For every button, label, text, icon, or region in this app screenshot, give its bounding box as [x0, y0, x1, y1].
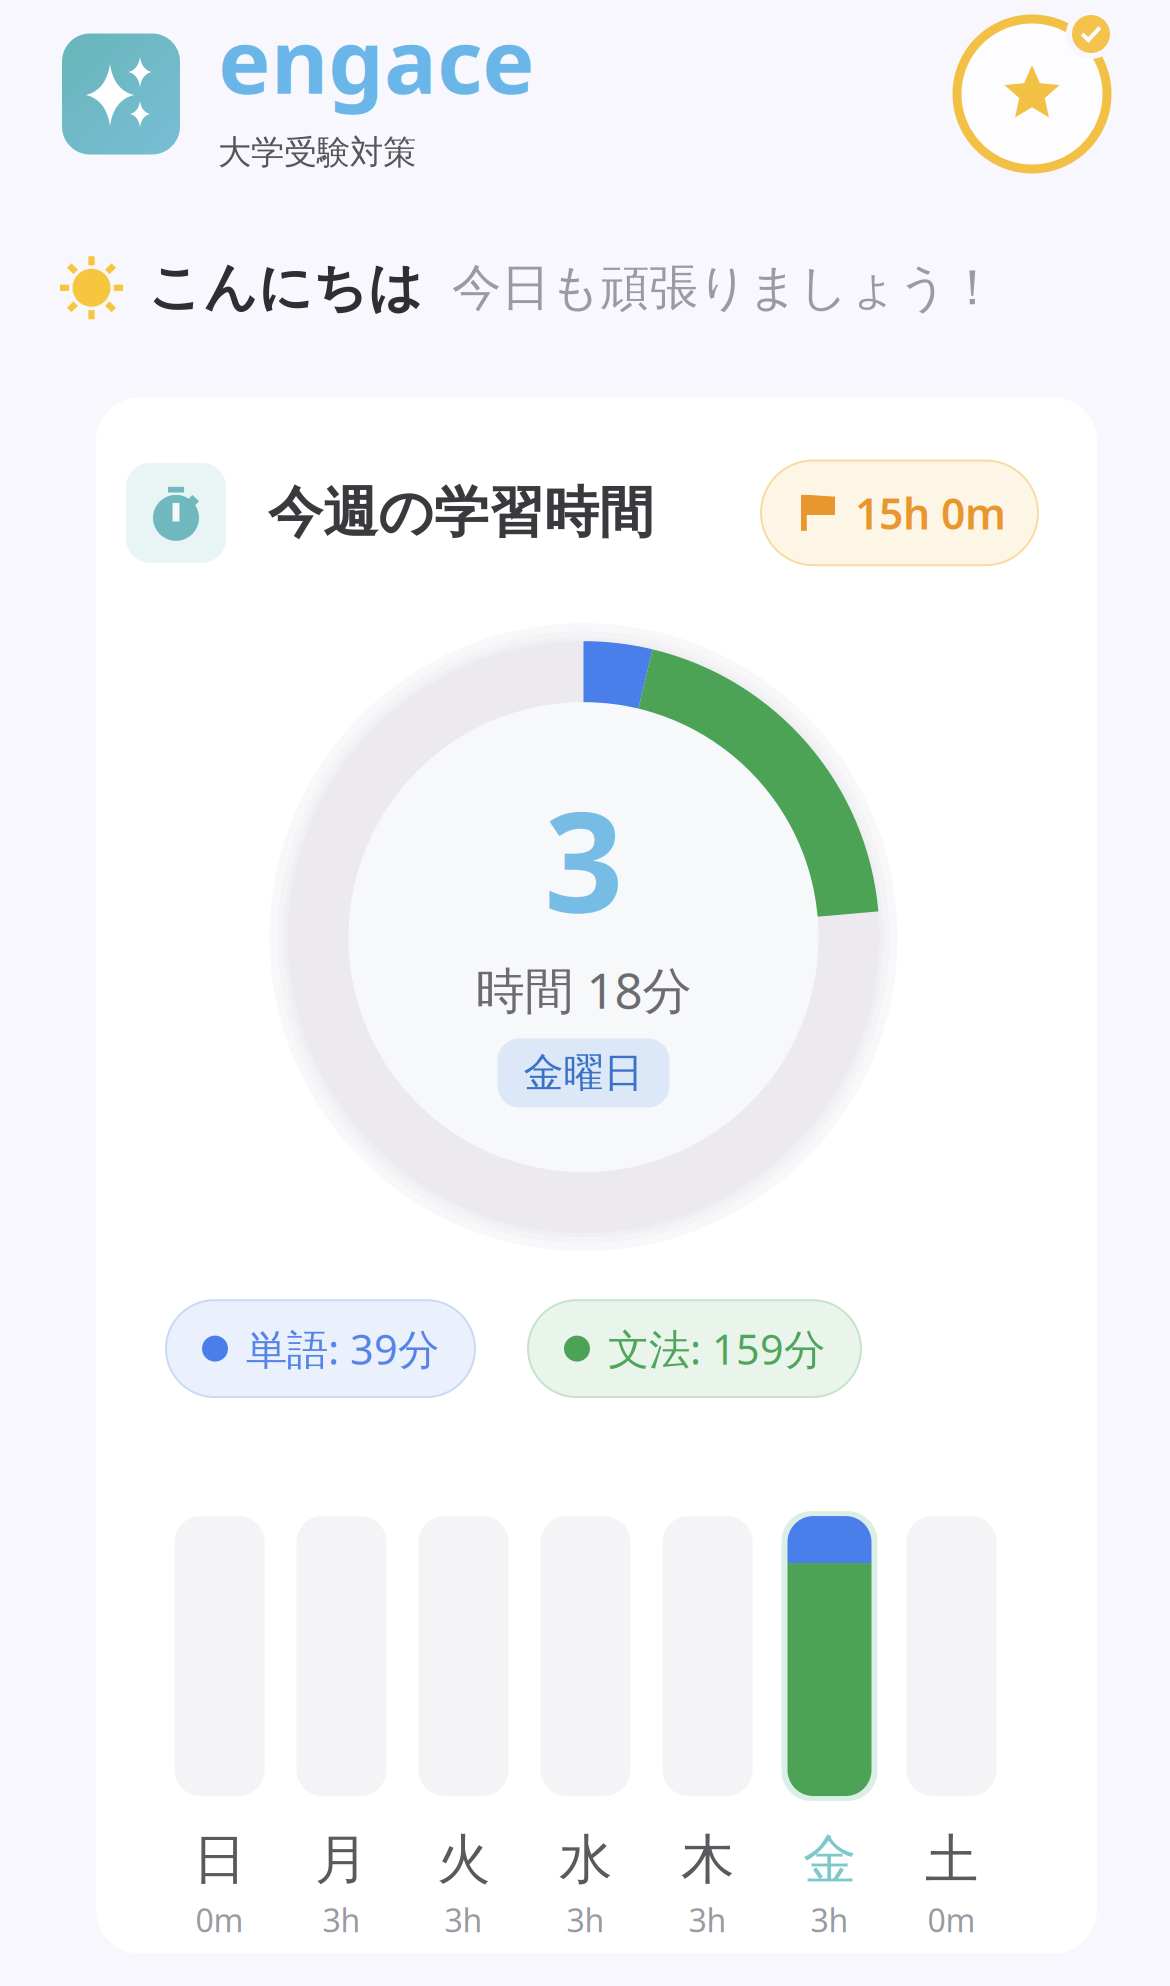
button[interactable]: 15h 0m	[761, 460, 1038, 565]
button[interactable]: 文法: 159分	[528, 1300, 861, 1397]
staticText: engace	[218, 1, 535, 118]
button[interactable]: engace app icon	[62, 33, 180, 154]
button[interactable]: 木	[662, 1511, 752, 1941]
staticText: 今週の学習時間	[268, 479, 654, 546]
button[interactable]: Achievements	[946, 8, 1118, 180]
staticText: 15h 0m	[855, 484, 1006, 541]
staticText: 文法: 159分	[608, 1321, 825, 1376]
button[interactable]: 火	[418, 1511, 508, 1941]
staticText: こんにちは	[148, 255, 423, 320]
staticText: 金	[803, 1827, 856, 1893]
staticText: 時間 18分	[475, 957, 691, 1022]
staticText: 0m	[927, 1899, 975, 1941]
button[interactable]: 日	[174, 1511, 264, 1941]
staticText: 3h	[566, 1899, 604, 1941]
staticText: 土	[925, 1827, 978, 1893]
staticText: 今日も頑張りましょう！	[452, 257, 997, 318]
staticText: 3h	[688, 1899, 726, 1941]
staticText: 日	[193, 1827, 246, 1893]
staticText: 月	[315, 1827, 368, 1893]
staticText: 単語: 39分	[246, 1321, 439, 1376]
button[interactable]: 水	[540, 1511, 630, 1941]
staticText: 金曜日	[523, 1048, 643, 1097]
staticText: 0m	[195, 1899, 243, 1941]
button[interactable]: 金	[784, 1511, 874, 1941]
button[interactable]: 単語: 39分	[166, 1300, 475, 1397]
staticText: 3h	[322, 1899, 360, 1941]
staticText: 木	[681, 1827, 734, 1893]
staticText: 3h	[444, 1899, 482, 1941]
staticText: 3h	[810, 1899, 848, 1941]
button[interactable]: 土	[906, 1511, 996, 1941]
button[interactable]: 月	[296, 1511, 386, 1941]
staticText: 火	[437, 1827, 490, 1893]
staticText: 水	[559, 1827, 612, 1893]
staticText: 3	[544, 767, 623, 951]
staticText: 大学受験対策	[218, 132, 416, 173]
